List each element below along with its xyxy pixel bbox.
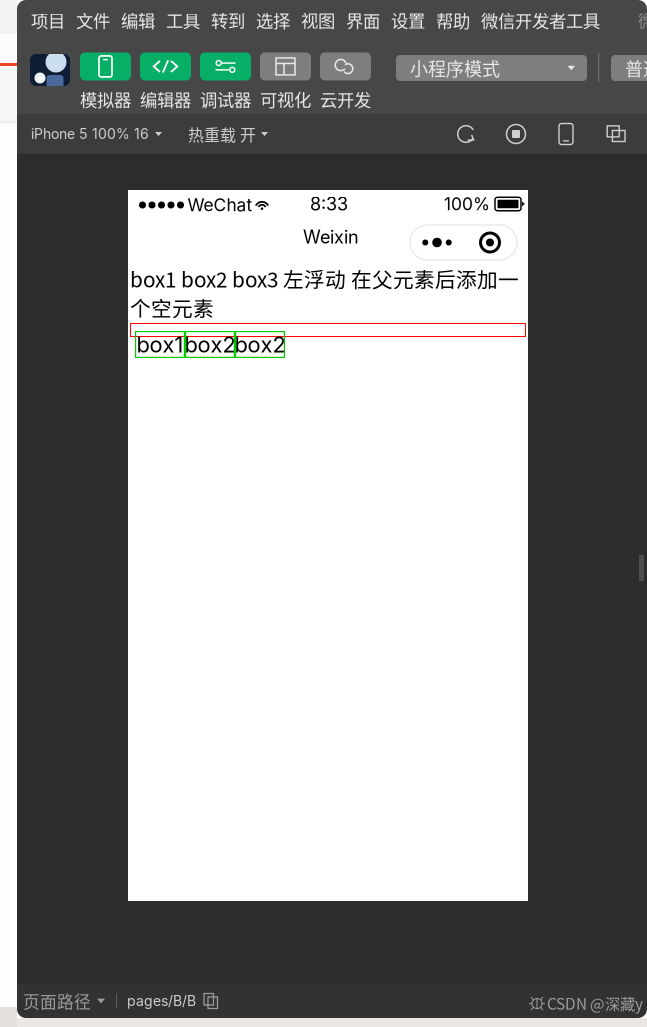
- staticText: CSDN @深藏y: [547, 992, 643, 1014]
- staticText: 热重载 开: [188, 122, 256, 146]
- button[interactable]: 编辑: [121, 8, 155, 32]
- staticText: 100%: [444, 193, 490, 214]
- staticText: 模拟器: [80, 86, 131, 112]
- button[interactable]: 项目: [31, 8, 65, 32]
- button[interactable]: Stop: [505, 123, 527, 145]
- staticText: 项目: [31, 7, 65, 33]
- button[interactable]: 模拟器: [80, 57, 131, 107]
- staticText: box1: [136, 331, 183, 358]
- staticText: 8:33: [310, 193, 348, 215]
- button[interactable]: 工具: [166, 8, 200, 32]
- staticText: 可视化: [260, 86, 311, 112]
- button[interactable]: 小程序模式: [396, 55, 587, 81]
- staticText: 转到: [211, 7, 245, 33]
- staticText: pages/B/B: [127, 992, 196, 1009]
- staticText: 个空元素: [130, 292, 214, 322]
- button[interactable]: 可视化: [260, 57, 311, 107]
- button[interactable]: 转到: [211, 8, 245, 32]
- button[interactable]: 视图: [301, 8, 335, 32]
- button[interactable]: Menu and close: [410, 225, 517, 260]
- staticText: 界面: [346, 7, 380, 33]
- button[interactable]: 云开发: [320, 57, 371, 107]
- button[interactable]: 调试器: [200, 57, 251, 107]
- staticText: 视图: [301, 7, 335, 33]
- button[interactable]: 普通: [611, 55, 647, 81]
- staticText: 微信开发者工具: [481, 7, 600, 33]
- staticText: 页面路径: [23, 989, 91, 1013]
- staticText: Weixin: [303, 226, 359, 248]
- staticText: 调试器: [200, 86, 251, 112]
- staticText: 文件: [76, 7, 110, 33]
- staticText: 编辑: [121, 7, 155, 33]
- button[interactable]: 文件: [76, 8, 110, 32]
- button[interactable]: Device: [555, 123, 577, 145]
- staticText: 设置: [391, 7, 425, 33]
- staticText: box2: [234, 331, 285, 358]
- button[interactable]: 页面路径: [14, 984, 114, 1018]
- button[interactable]: 选择: [256, 8, 290, 32]
- staticText: 编辑器: [140, 86, 191, 112]
- staticText: 工具: [166, 7, 200, 33]
- staticText: iPhone 5 100% 16: [31, 125, 149, 142]
- button[interactable]: iPhone 5 100% 16: [21, 114, 172, 154]
- staticText: 微: [638, 7, 647, 33]
- button[interactable]: Refresh: [455, 123, 477, 145]
- button[interactable]: 微信开发者工具: [481, 8, 600, 32]
- button[interactable]: 帮助: [436, 8, 470, 32]
- button[interactable]: 界面: [346, 8, 380, 32]
- staticText: 普通: [625, 55, 647, 81]
- staticText: 选择: [256, 7, 290, 33]
- button[interactable]: Detach window: [605, 124, 627, 143]
- button[interactable]: Copy page path: [202, 986, 220, 1016]
- staticText: WeChat: [187, 194, 252, 215]
- staticText: 帮助: [436, 7, 470, 33]
- button[interactable]: 编辑器: [140, 57, 191, 107]
- staticText: box2: [184, 331, 235, 358]
- button[interactable]: 设置: [391, 8, 425, 32]
- button[interactable]: 热重载 开: [176, 114, 280, 154]
- staticText: box1 box2 box3 左浮动 在父元素后添加一: [130, 263, 519, 293]
- staticText: 云开发: [320, 86, 371, 112]
- button[interactable]: Account: [30, 54, 70, 86]
- staticText: 小程序模式: [410, 55, 500, 81]
